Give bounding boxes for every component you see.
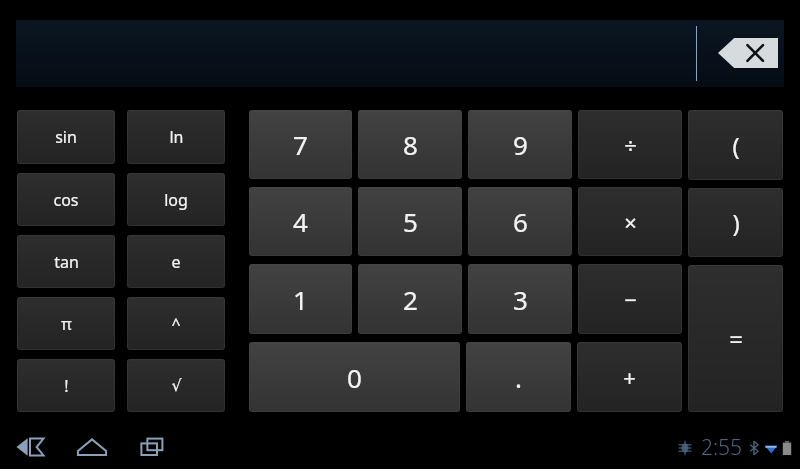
button[interactable]: Recent apps [132,431,176,463]
staticText: tan [54,251,79,273]
staticText: log [164,189,188,211]
button[interactable]: π [17,297,115,350]
staticText: 8 [403,127,418,162]
staticText: 9 [513,127,528,162]
button[interactable]: ^ [127,297,225,350]
button[interactable]: 2 [358,264,462,334]
button[interactable]: Delete [718,38,778,68]
button[interactable]: Back [8,431,52,463]
button[interactable]: + [577,342,682,412]
staticText: 7 [293,127,308,162]
staticText: 1 [293,282,308,317]
button[interactable]: sin [17,110,115,164]
staticText: π [61,313,72,335]
staticText: 5 [403,204,418,239]
staticText: ln [169,126,184,148]
staticText: + [623,362,636,392]
staticText: ) [732,206,740,239]
button[interactable]: 4 [249,187,352,256]
button[interactable]: tan [17,235,115,288]
staticText: − [624,284,637,314]
button[interactable]: 7 [249,110,352,179]
staticText: 4 [293,204,308,239]
button[interactable]: − [578,264,682,334]
button[interactable]: ÷ [578,110,682,179]
button[interactable]: log [127,173,225,226]
staticText: 3 [513,282,528,317]
staticText: e [171,251,181,273]
button[interactable]: Home [70,431,114,463]
staticText: ! [64,375,69,397]
button[interactable]: = [688,265,783,412]
button[interactable]: 5 [358,187,462,256]
staticText: 6 [513,204,528,239]
button[interactable]: ) [688,188,783,257]
button[interactable]: ( [688,110,783,180]
button[interactable]: cos [17,173,115,226]
staticText: ^ [171,313,181,335]
button[interactable]: 6 [468,187,572,256]
staticText: 0 [347,360,362,395]
button[interactable]: e [127,235,225,288]
staticText: √ [171,376,182,395]
button[interactable]: . [466,342,571,412]
staticText: × [624,207,637,237]
staticText: 2 [403,282,418,317]
staticText: = [729,322,743,355]
staticText: ÷ [624,130,637,160]
staticText: ( [732,129,740,162]
staticText: . [515,360,522,395]
button[interactable]: 1 [249,264,352,334]
staticText: cos [53,189,79,211]
staticText: 2:55 [701,433,743,462]
button[interactable]: 3 [468,264,572,334]
staticText: sin [55,126,77,148]
button[interactable]: 9 [468,110,572,179]
button[interactable]: 0 [249,342,460,412]
button[interactable]: ! [17,359,115,412]
button[interactable]: √ [127,359,225,412]
button[interactable]: ln [127,110,225,164]
button[interactable]: 8 [358,110,462,179]
button[interactable]: × [578,187,682,256]
